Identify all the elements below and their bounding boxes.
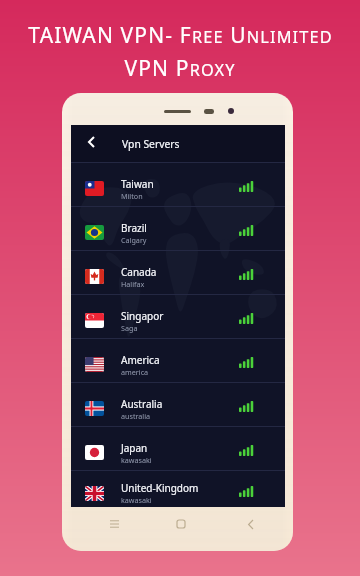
button[interactable]: Home — [169, 512, 193, 536]
staticText: TAIWAN VPN- FREE UNLIMITED — [28, 21, 333, 50]
staticText: Saga — [121, 323, 138, 333]
button[interactable]: Taiwan — [71, 162, 285, 206]
button[interactable]: Singapor — [71, 294, 285, 338]
staticText: kawasaki — [121, 455, 152, 465]
button[interactable]: Back — [71, 125, 111, 162]
staticText: Calgary — [121, 235, 147, 245]
button[interactable]: Japan — [71, 426, 285, 470]
button[interactable]: Back — [238, 512, 262, 536]
button[interactable]: Brazil — [71, 206, 285, 250]
staticText: kawasaki — [121, 495, 152, 505]
staticText: Halifax — [121, 279, 145, 289]
staticText: Australia — [121, 397, 163, 411]
button[interactable]: United-Kingdom — [71, 470, 285, 507]
staticText: Milton — [121, 191, 143, 201]
button[interactable]: Australia — [71, 382, 285, 426]
button[interactable]: Canada — [71, 250, 285, 294]
staticText: Taiwan — [121, 177, 154, 191]
staticText: Singapor — [121, 309, 164, 323]
staticText: America — [121, 353, 160, 367]
staticText: Vpn Servers — [122, 137, 180, 151]
button[interactable]: America — [71, 338, 285, 382]
button[interactable]: Recent apps — [102, 512, 126, 536]
staticText: australia — [121, 411, 151, 421]
staticText: Canada — [121, 265, 157, 279]
staticText: Japan — [121, 441, 148, 455]
staticText: United-Kingdom — [121, 481, 199, 495]
staticText: Brazil — [121, 221, 147, 235]
staticText: VPN PROXY — [124, 54, 236, 83]
staticText: america — [121, 367, 149, 377]
